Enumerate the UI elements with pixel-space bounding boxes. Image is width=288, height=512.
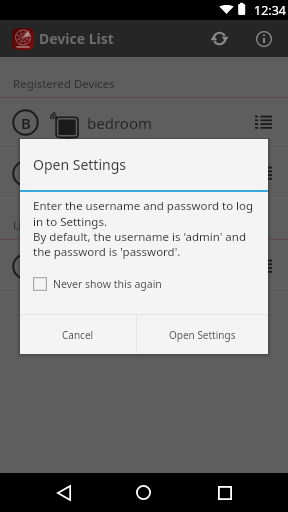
staticText: Open Settings bbox=[169, 328, 236, 342]
button[interactable]: Open Settings bbox=[137, 315, 268, 354]
staticText: bedroom bbox=[87, 113, 152, 133]
button[interactable]: B bbox=[0, 240, 288, 292]
button[interactable]: Info bbox=[245, 20, 282, 57]
staticText: 12:34 bbox=[254, 2, 286, 19]
staticText: Unregistered Devices bbox=[13, 218, 128, 234]
button[interactable]: Back bbox=[40, 473, 87, 512]
staticText: Enter the username and password to log i… bbox=[33, 198, 254, 259]
staticText: Device List bbox=[39, 29, 114, 48]
button[interactable]: Home bbox=[120, 473, 167, 512]
button[interactable]: Refresh bbox=[201, 20, 238, 57]
button[interactable]: Cancel bbox=[20, 315, 136, 354]
staticText: Cancel bbox=[62, 328, 94, 342]
button[interactable]: Recents bbox=[201, 473, 248, 512]
staticText: Registered Devices bbox=[13, 76, 115, 92]
button[interactable]: B bbox=[0, 149, 288, 198]
staticText: Open Settings bbox=[33, 155, 127, 174]
staticText: B bbox=[21, 113, 31, 133]
button[interactable]: Never show this again bbox=[33, 277, 162, 291]
button[interactable]: B bbox=[0, 97, 288, 148]
staticText: Never show this again bbox=[53, 277, 162, 291]
